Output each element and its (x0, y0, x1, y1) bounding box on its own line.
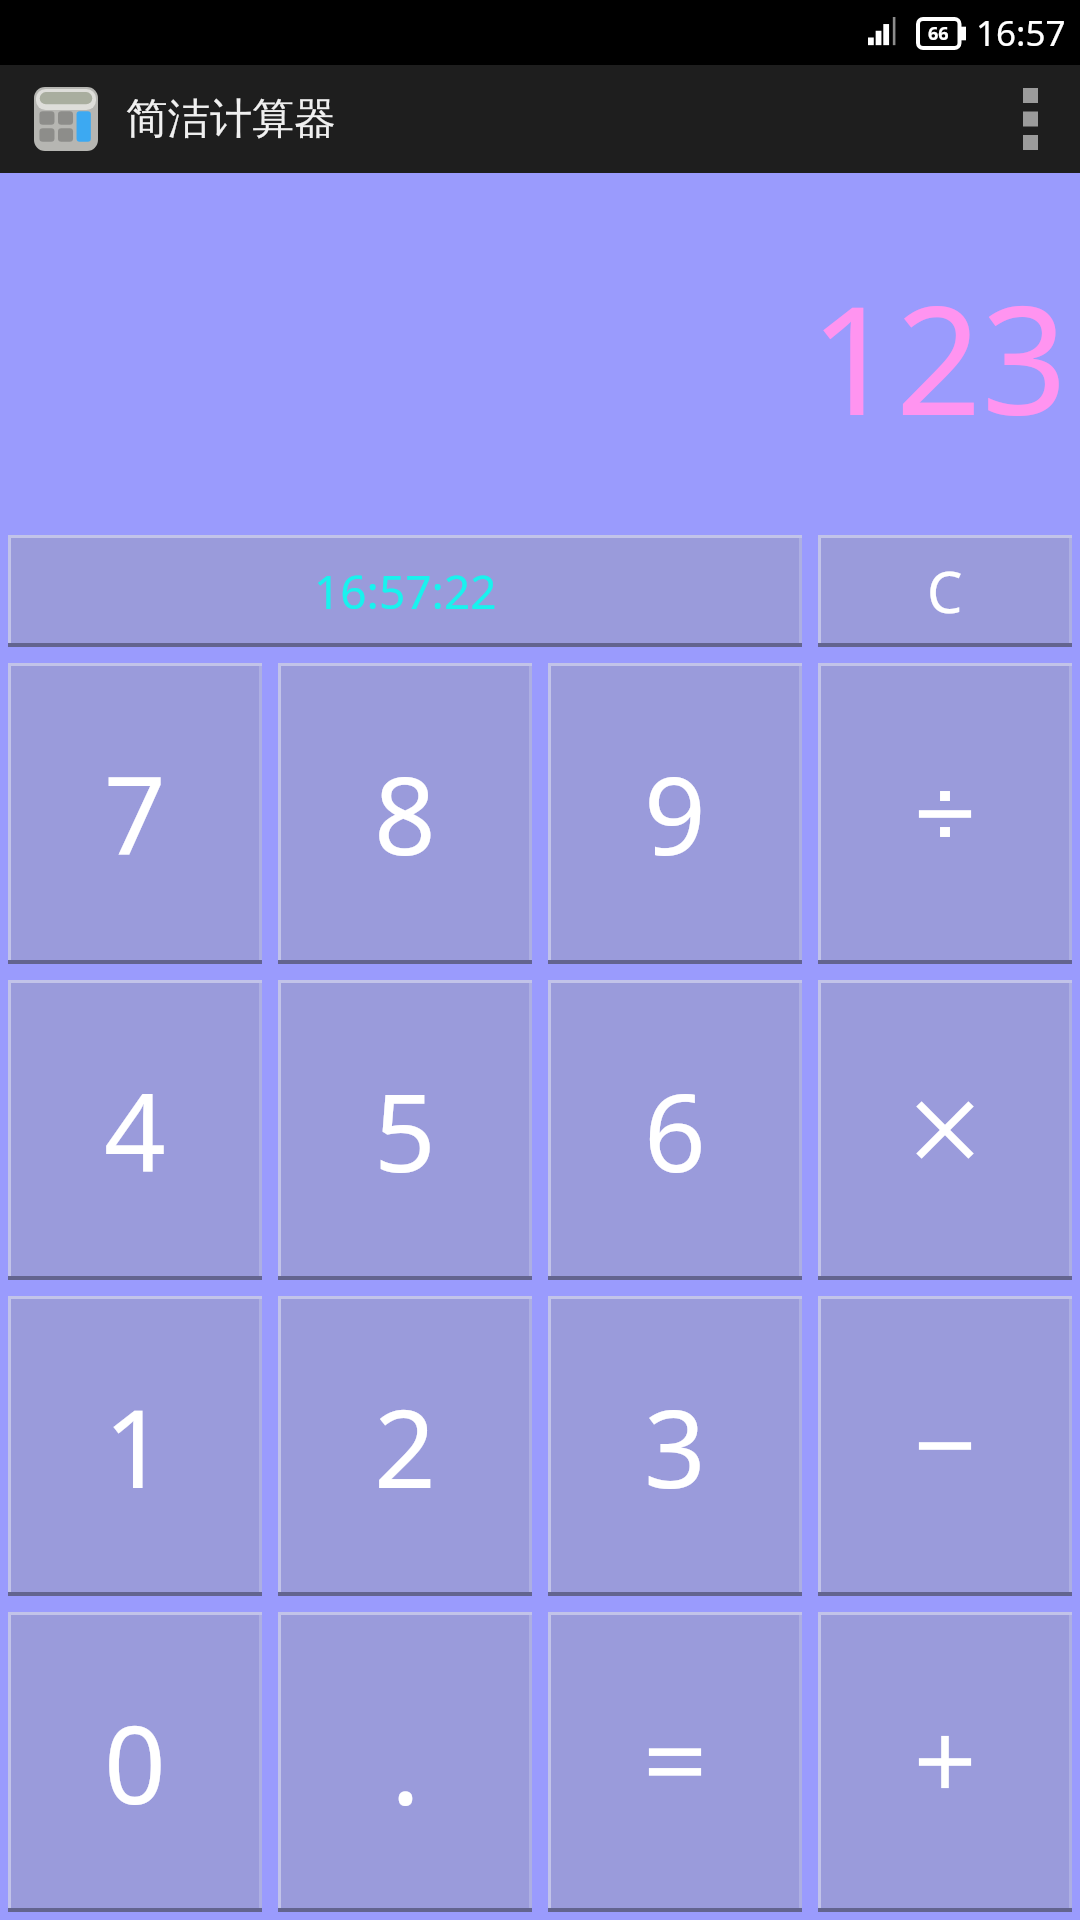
button[interactable]: 2 (278, 1296, 532, 1596)
button[interactable]: 5 (278, 980, 532, 1280)
staticText: 6 (644, 1057, 706, 1204)
staticText: 0 (104, 1689, 166, 1836)
button[interactable]: 0 (8, 1612, 262, 1912)
staticText: 7 (104, 740, 166, 887)
button[interactable]: 8 (278, 663, 532, 964)
staticText: C (927, 553, 963, 629)
staticText: 4 (104, 1057, 166, 1204)
staticText: 1 (104, 1373, 166, 1520)
button[interactable]: 3 (548, 1296, 802, 1596)
button[interactable]: 4 (8, 980, 262, 1280)
staticText: . (391, 1689, 420, 1836)
button[interactable]: 6 (548, 980, 802, 1280)
button[interactable] (818, 1296, 1072, 1596)
staticText: 16:57 (976, 9, 1066, 57)
button[interactable]: 1 (8, 1296, 262, 1596)
staticText: 简洁计算器 (126, 93, 336, 146)
button[interactable] (548, 1612, 802, 1912)
staticText: 9 (644, 740, 706, 887)
staticText: 3 (644, 1373, 706, 1520)
button[interactable]: 9 (548, 663, 802, 964)
button[interactable]: 7 (8, 663, 262, 964)
staticText: 123 (810, 255, 1068, 459)
staticText: 2 (374, 1373, 436, 1520)
button[interactable]: More options (980, 65, 1080, 173)
button[interactable] (818, 1612, 1072, 1912)
staticText: 16:57:22 (314, 560, 497, 623)
button[interactable]: . (278, 1612, 532, 1912)
staticText: 66 (928, 21, 949, 46)
button[interactable]: 16:57:22 (8, 535, 802, 647)
button[interactable]: C (818, 535, 1072, 647)
staticText: 8 (374, 740, 436, 887)
staticText: 5 (374, 1057, 436, 1204)
button[interactable] (818, 663, 1072, 964)
button[interactable] (818, 980, 1072, 1280)
